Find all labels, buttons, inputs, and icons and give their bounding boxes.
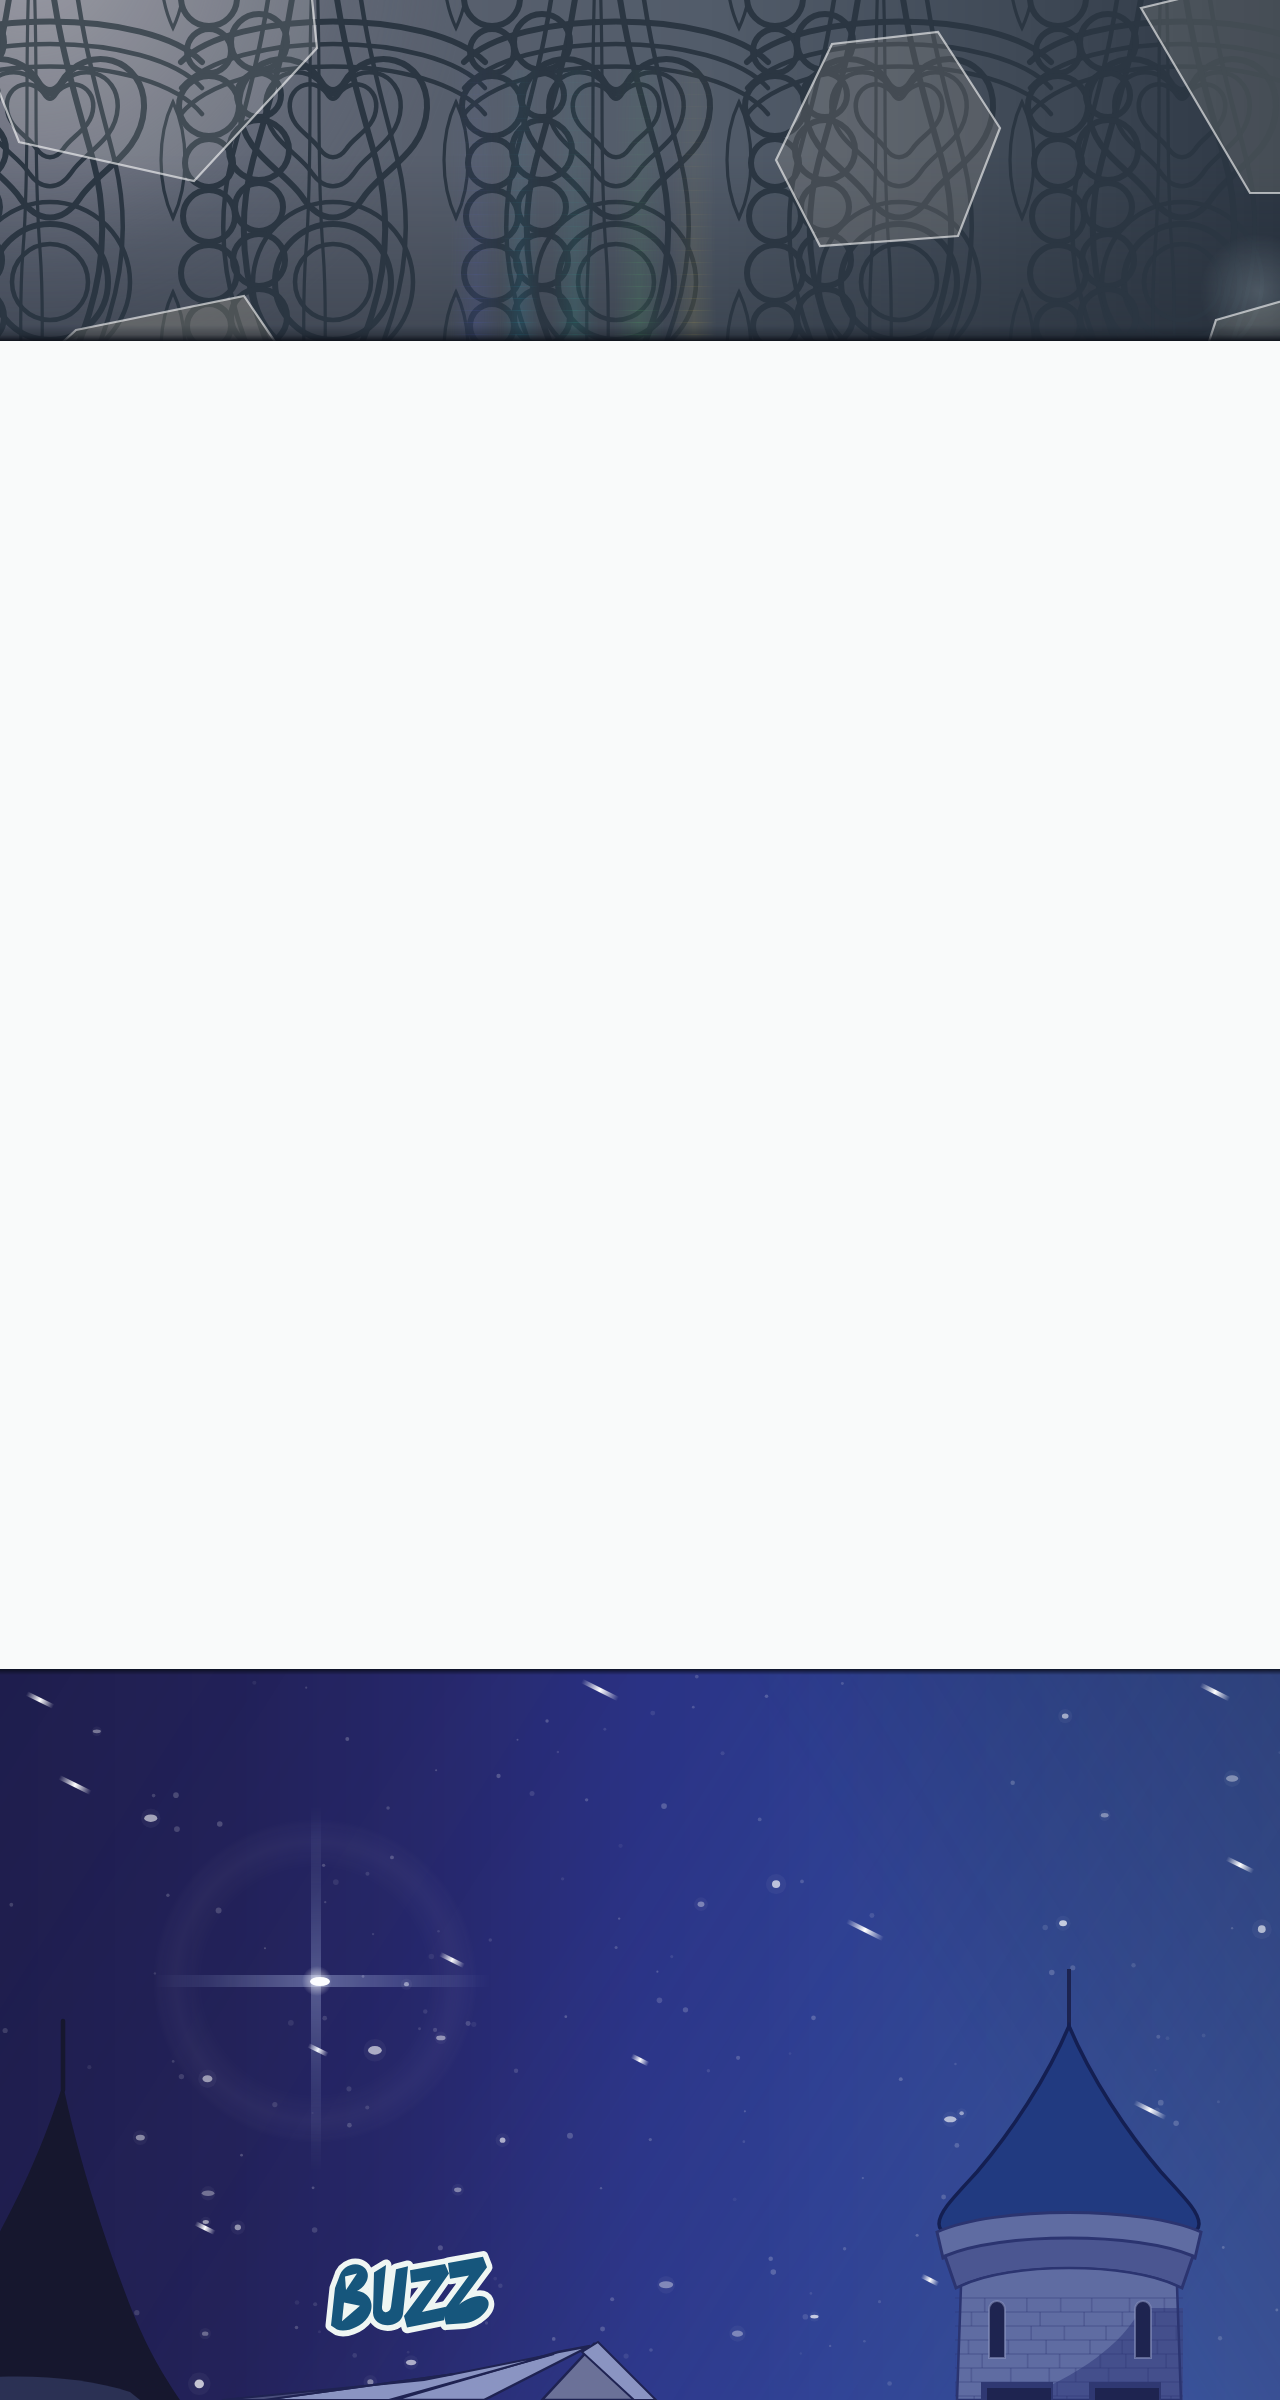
button[interactable]: Comic panel 1 <box>0 0 1280 341</box>
button[interactable]: Comic panel 2 <box>0 1669 1280 2400</box>
